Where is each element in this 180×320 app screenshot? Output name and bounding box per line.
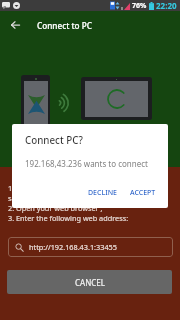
button[interactable]: ACCEPT xyxy=(124,184,162,202)
staticText: 76% xyxy=(132,1,147,11)
staticText: 22:20 xyxy=(156,0,177,11)
staticText: 3. Enter the following web address: xyxy=(8,213,129,223)
staticText: http://192.168.43.1:33455 xyxy=(29,242,117,252)
button[interactable]: DECLINE xyxy=(82,184,124,202)
staticText: DECLINE xyxy=(88,188,118,198)
staticText: Connect to PC xyxy=(37,20,92,31)
staticText: 192.168,43.236 wants to connect xyxy=(25,158,148,169)
staticText: 1. Connect PC and phone to the xyxy=(8,183,117,193)
button[interactable]: CANCEL xyxy=(7,270,172,294)
staticText: Connect PC? xyxy=(25,134,83,147)
staticText: same WiFi network; xyxy=(8,193,75,203)
button[interactable]: Back xyxy=(0,11,30,39)
staticText: CANCEL xyxy=(75,277,105,288)
staticText: ACCEPT xyxy=(130,188,156,198)
staticText: 2. Open your web browser ; xyxy=(8,203,103,213)
button[interactable]: http://192.168.43.1:33455 xyxy=(8,237,173,257)
